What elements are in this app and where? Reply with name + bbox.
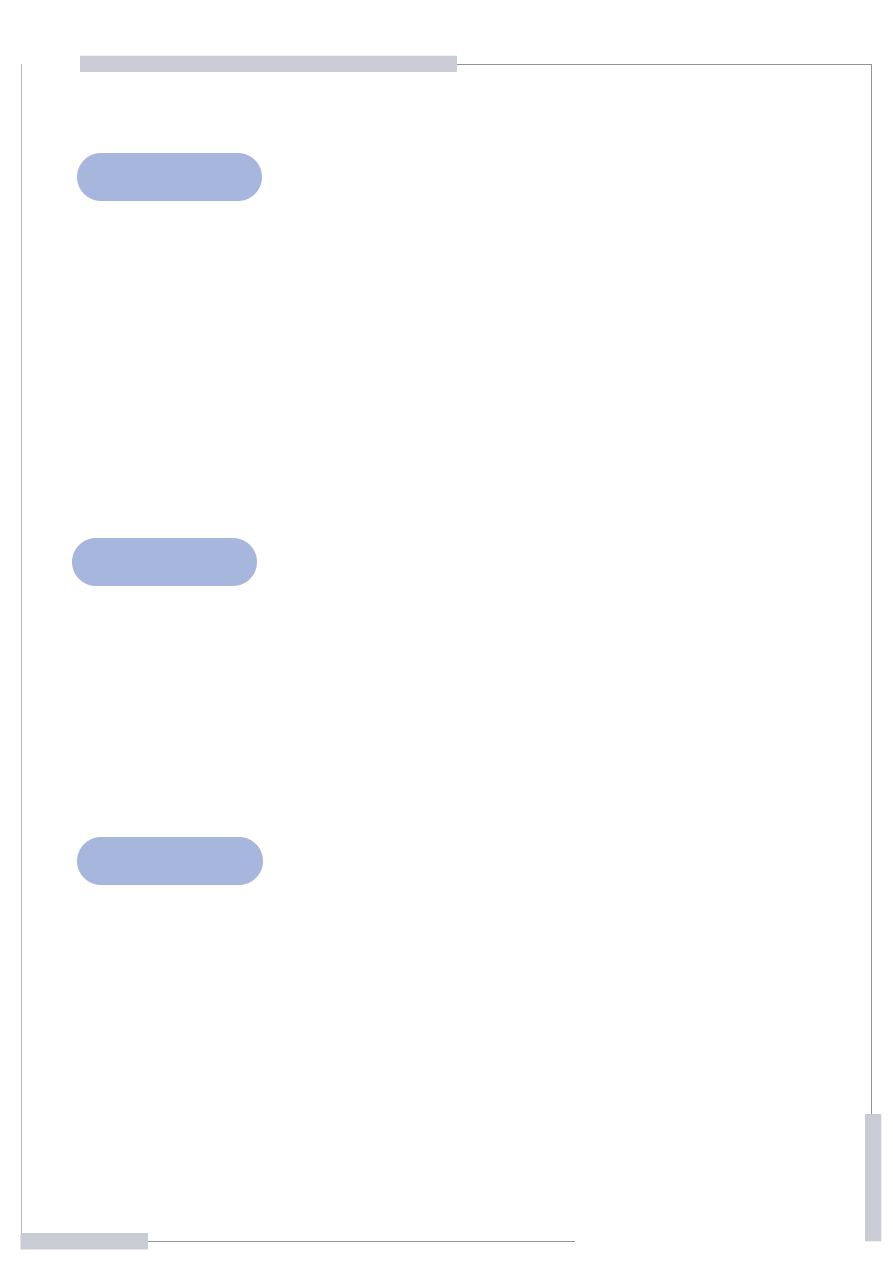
button[interactable]: Row one: [77, 153, 262, 201]
button[interactable]: Row three: [77, 837, 263, 885]
button[interactable]: Row two: [72, 538, 257, 586]
